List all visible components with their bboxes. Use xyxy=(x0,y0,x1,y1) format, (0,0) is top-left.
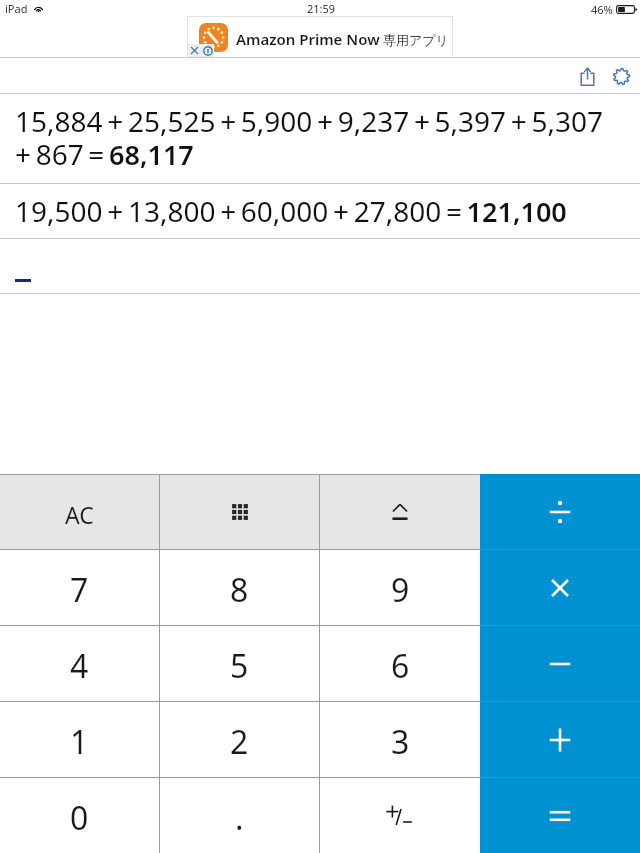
staticText: 6 xyxy=(391,644,410,688)
button[interactable]: . xyxy=(160,778,319,853)
button[interactable]: Equals xyxy=(480,778,640,853)
button[interactable]: Ad info xyxy=(201,44,214,57)
staticText: AC xyxy=(65,499,94,530)
staticText: 0 xyxy=(70,796,89,840)
button[interactable]: Add xyxy=(480,702,640,777)
button[interactable] xyxy=(0,239,640,293)
staticText: . xyxy=(235,796,244,840)
staticText: iPad xyxy=(5,1,28,16)
staticText: 7 xyxy=(70,568,89,612)
staticText: 4 xyxy=(70,644,89,688)
button[interactable]: Subtract xyxy=(480,626,640,701)
button[interactable]: Settings xyxy=(604,59,638,93)
button[interactable]: Divide xyxy=(480,475,640,549)
button[interactable]: Share xyxy=(570,59,604,93)
button[interactable]: 1 xyxy=(0,702,159,777)
staticText: 19,500 + 13,800 + 60,000 + 27,800 = 121,… xyxy=(15,192,567,230)
button[interactable]: 6 xyxy=(320,626,480,701)
staticText: Amazon Prime Now 専用アプリ xyxy=(236,29,449,49)
button[interactable]: Multiply xyxy=(480,550,640,625)
button[interactable]: 4 xyxy=(0,626,159,701)
staticText: 21:59 xyxy=(307,1,336,16)
staticText: 1 xyxy=(70,720,89,764)
staticText: 3 xyxy=(391,720,410,764)
staticText: 8 xyxy=(230,568,249,612)
button[interactable]: 8 xyxy=(160,550,319,625)
button[interactable]: 0 xyxy=(0,778,159,853)
button[interactable]: Amazon Prime Now 専用アプリ xyxy=(187,16,453,58)
button[interactable]: 15,884 + 25,525 + 5,900 + 9,237 + 5,397 … xyxy=(0,94,640,183)
button[interactable]: 5 xyxy=(160,626,319,701)
button[interactable]: 3 xyxy=(320,702,480,777)
button[interactable]: Keypad xyxy=(160,475,319,549)
button[interactable]: Hide keyboard xyxy=(320,475,480,549)
staticText: 2 xyxy=(230,720,249,764)
button[interactable]: Close ad xyxy=(188,44,201,57)
button[interactable]: 9 xyxy=(320,550,480,625)
staticText: 9 xyxy=(391,568,410,612)
button[interactable]: AC xyxy=(0,475,159,549)
staticText: 5 xyxy=(230,644,249,688)
staticText: 15,884 + 25,525 + 5,900 + 9,237 + 5,397 … xyxy=(15,102,604,173)
button[interactable]: 2 xyxy=(160,702,319,777)
staticText: 46% xyxy=(591,2,613,17)
button[interactable]: Plus minus xyxy=(320,778,480,853)
button[interactable]: 7 xyxy=(0,550,159,625)
button[interactable]: 19,500 + 13,800 + 60,000 + 27,800 = 121,… xyxy=(0,184,640,238)
